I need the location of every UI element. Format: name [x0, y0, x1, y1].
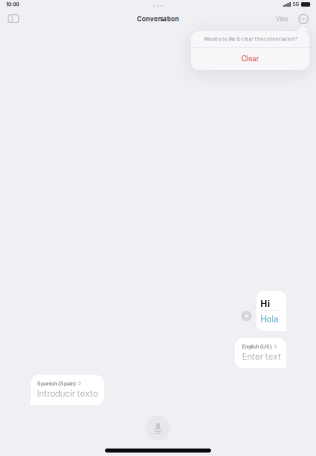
- staticText: Hola: [260, 314, 278, 324]
- staticText: 5G: [293, 2, 299, 7]
- staticText: Clear: [241, 54, 259, 63]
- staticText: View: [275, 15, 288, 23]
- button[interactable]: View: [271, 11, 293, 27]
- staticText: Enter text: [242, 351, 281, 362]
- button[interactable]: Show sidebar: [1, 9, 25, 29]
- button[interactable]: Clear: [191, 47, 309, 70]
- staticText: Spanish (Spain): [37, 380, 76, 387]
- staticText: Would you like to clear this conversatio…: [204, 36, 297, 42]
- button[interactable]: More options: [295, 11, 311, 27]
- staticText: English (US): [242, 343, 272, 350]
- staticText: Introducir texto: [37, 388, 98, 399]
- staticText: Hi: [260, 298, 269, 309]
- button[interactable]: Record audio: [145, 415, 170, 440]
- staticText: 10:00: [6, 2, 19, 7]
- staticText: Conversation: [137, 15, 179, 23]
